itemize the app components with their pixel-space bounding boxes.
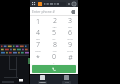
staticText: TUV	[52, 50, 57, 52]
button[interactable]: #	[62, 52, 78, 64]
button[interactable]: Call	[32, 65, 76, 73]
staticText: 8	[53, 40, 57, 50]
button[interactable]: 9	[62, 40, 78, 52]
staticText: 2	[53, 16, 57, 26]
staticText: 3	[68, 16, 72, 26]
button[interactable]: 4	[30, 28, 46, 40]
button[interactable]: Enter phone #	[32, 7, 69, 16]
staticText: *	[36, 53, 40, 63]
staticText: 7	[36, 40, 40, 50]
button[interactable]: Backspace	[69, 8, 76, 15]
staticText: Enter phone #	[32, 9, 55, 14]
button[interactable]: *	[30, 52, 46, 64]
button[interactable]: 1	[30, 16, 46, 28]
staticText: 6	[68, 28, 72, 38]
button[interactable]: Log	[54, 75, 78, 84]
staticText: 1	[36, 17, 40, 27]
staticText: WXYZ	[67, 50, 73, 52]
button[interactable]: App icon	[37, 1, 42, 6]
button[interactable]: Apps	[31, 1, 36, 6]
staticText: #	[68, 53, 73, 63]
button[interactable]: 5	[46, 28, 62, 40]
staticText: DEF	[68, 26, 72, 28]
staticText: 9	[68, 40, 72, 50]
staticText: 5	[52, 28, 56, 38]
button[interactable]: Dialer	[30, 75, 54, 84]
staticText: JKL	[52, 38, 56, 40]
staticText: ABC	[52, 26, 57, 28]
staticText: +	[53, 62, 55, 64]
button[interactable]: 3	[62, 16, 78, 28]
button[interactable]: 7	[30, 40, 46, 52]
button[interactable]: 6	[62, 28, 78, 40]
staticText: Dialer	[39, 81, 46, 84]
staticText: GHI	[36, 38, 40, 40]
staticText: PQRS	[35, 50, 41, 52]
staticText: 0	[52, 52, 56, 62]
staticText: Log	[65, 81, 69, 84]
staticText: MNO	[67, 38, 73, 40]
button[interactable]: 8	[46, 40, 62, 52]
button[interactable]: More	[67, 2, 71, 6]
button[interactable]: 2	[46, 16, 62, 28]
button[interactable]: Settings	[71, 1, 77, 7]
button[interactable]	[43, 2, 66, 6]
staticText: 4	[36, 28, 40, 38]
button[interactable]: 0	[46, 52, 62, 64]
